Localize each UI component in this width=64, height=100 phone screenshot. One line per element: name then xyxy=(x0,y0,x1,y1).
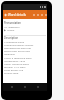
staticText: containing words usually xyxy=(4,43,34,46)
staticText: alphabetically with info xyxy=(4,46,32,49)
staticText: ▶ Listen xyxy=(4,28,15,31)
button[interactable]: Bookmark xyxy=(40,13,43,16)
staticText: Word details xyxy=(8,13,26,17)
staticText: about their forms and xyxy=(4,49,30,52)
staticText: Ritually: 4 / 5 stars xyxy=(4,65,26,68)
staticText: Value: common word xyxy=(4,62,29,65)
staticText: / n. dikʃənəri / xyxy=(4,25,21,28)
staticText: Noun: a reference work xyxy=(4,56,32,59)
button[interactable]: Previous xyxy=(32,13,35,16)
button[interactable]: Back xyxy=(10,85,14,89)
button[interactable]: Next xyxy=(36,13,39,16)
staticText: Appearance: 1842 xyxy=(4,59,26,62)
staticText: A reference book xyxy=(4,40,25,43)
button[interactable]: More options xyxy=(44,13,47,16)
staticText: meaning. xyxy=(4,52,16,55)
button[interactable]: Navigate up xyxy=(4,13,8,17)
staticText: Description xyxy=(4,36,19,40)
staticText: Source: web xyxy=(4,71,19,74)
staticText: Pronunciation xyxy=(4,21,21,24)
button[interactable]: Home xyxy=(23,85,27,89)
staticText: Point group: n/a xyxy=(4,68,24,71)
button[interactable]: Recents xyxy=(36,85,40,89)
